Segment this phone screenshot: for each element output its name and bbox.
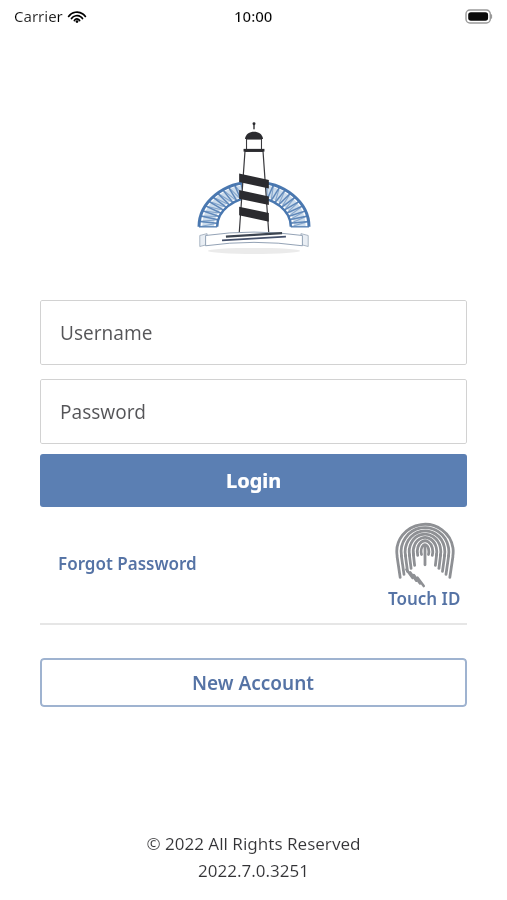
staticText: 2022.7.0.3251 bbox=[198, 859, 309, 882]
staticText: Password bbox=[60, 399, 146, 425]
staticText: Touch ID bbox=[388, 587, 461, 610]
staticText: Forgot Password bbox=[58, 552, 197, 575]
button[interactable]: Password bbox=[40, 379, 467, 444]
staticText: © 2022 All Rights Reserved bbox=[146, 832, 361, 855]
button[interactable]: New Account bbox=[40, 658, 467, 707]
staticText: Username bbox=[60, 320, 153, 346]
button[interactable]: Login bbox=[40, 454, 467, 507]
staticText: 10:00 bbox=[234, 6, 273, 26]
staticText: Login bbox=[226, 467, 282, 494]
staticText: Carrier bbox=[14, 6, 63, 26]
staticText: New Account bbox=[192, 670, 315, 696]
button[interactable]: Touch ID bbox=[382, 522, 467, 612]
button[interactable]: Username bbox=[40, 300, 467, 365]
button[interactable]: Forgot Password bbox=[40, 544, 215, 583]
